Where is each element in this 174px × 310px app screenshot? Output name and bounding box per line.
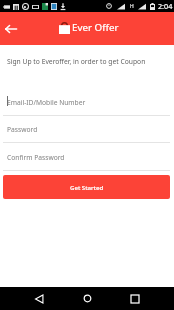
button[interactable]: Back bbox=[16, 287, 62, 310]
button[interactable]: Home bbox=[64, 287, 110, 310]
staticText: H bbox=[130, 3, 134, 10]
staticText: 2:04 bbox=[158, 1, 173, 11]
staticText: Email-ID/Mobile Number bbox=[7, 98, 86, 107]
button[interactable]: Recent apps bbox=[112, 287, 158, 310]
staticText: Get Started bbox=[70, 183, 104, 191]
button[interactable]: Get Started bbox=[3, 175, 170, 199]
staticText: Password bbox=[7, 125, 38, 134]
button[interactable]: Back bbox=[1, 19, 21, 39]
staticText: Sign Up to Everoffer, in order to get Co… bbox=[7, 57, 146, 66]
staticText: Confirm Password bbox=[7, 153, 65, 162]
staticText: Ever Offer bbox=[72, 21, 119, 34]
